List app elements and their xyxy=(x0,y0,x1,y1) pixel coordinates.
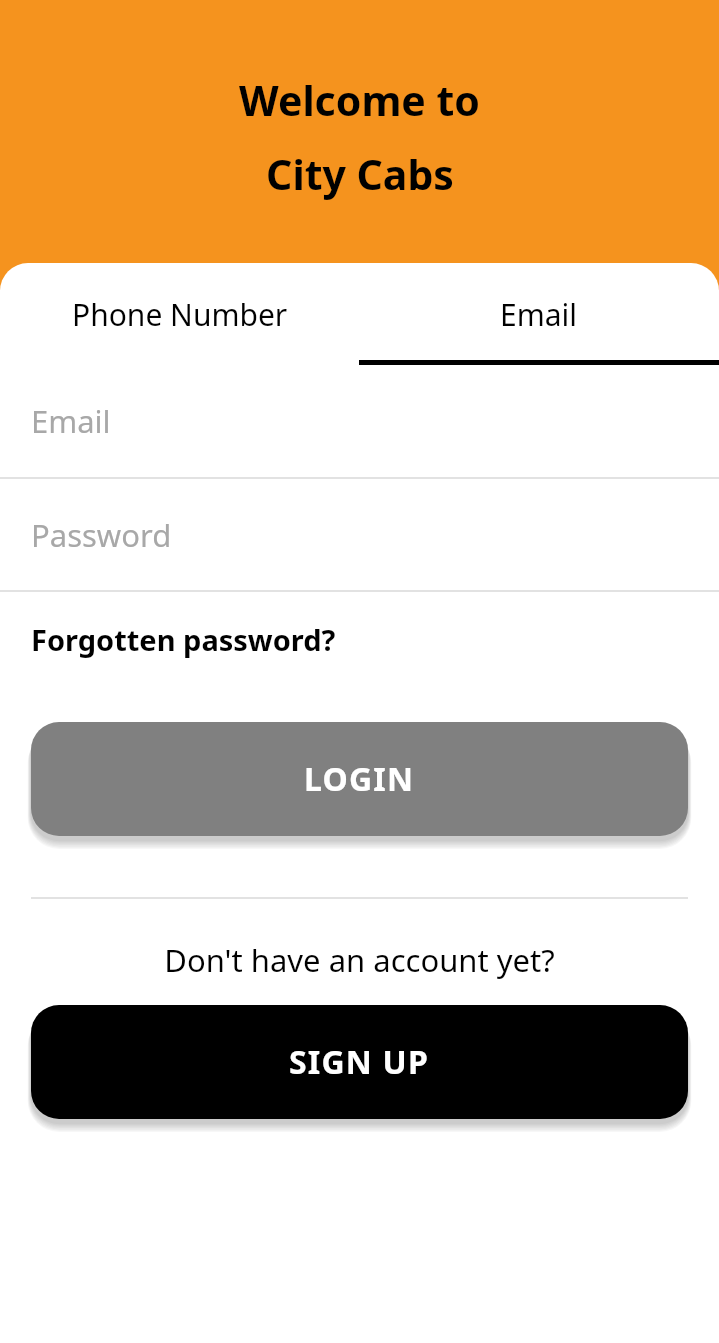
button[interactable]: LOGIN xyxy=(31,722,688,836)
staticText: SIGN UP xyxy=(289,1040,430,1084)
staticText: City Cabs xyxy=(266,146,454,202)
button[interactable]: Password xyxy=(0,479,719,590)
staticText: Password xyxy=(31,514,172,556)
button[interactable]: Phone Number xyxy=(0,263,359,365)
button[interactable]: Forgotten password? xyxy=(31,614,336,665)
button[interactable]: Email xyxy=(0,365,719,477)
staticText: LOGIN xyxy=(304,757,415,801)
staticText: Don't have an account yet? xyxy=(0,939,719,981)
button[interactable]: SIGN UP xyxy=(31,1005,688,1119)
staticText: Email xyxy=(31,400,111,442)
staticText: Forgotten password? xyxy=(31,620,336,659)
button[interactable]: Email xyxy=(359,263,719,365)
staticText: Welcome to xyxy=(239,72,480,128)
staticText: Phone Number xyxy=(72,294,288,335)
staticText: Email xyxy=(500,294,578,335)
